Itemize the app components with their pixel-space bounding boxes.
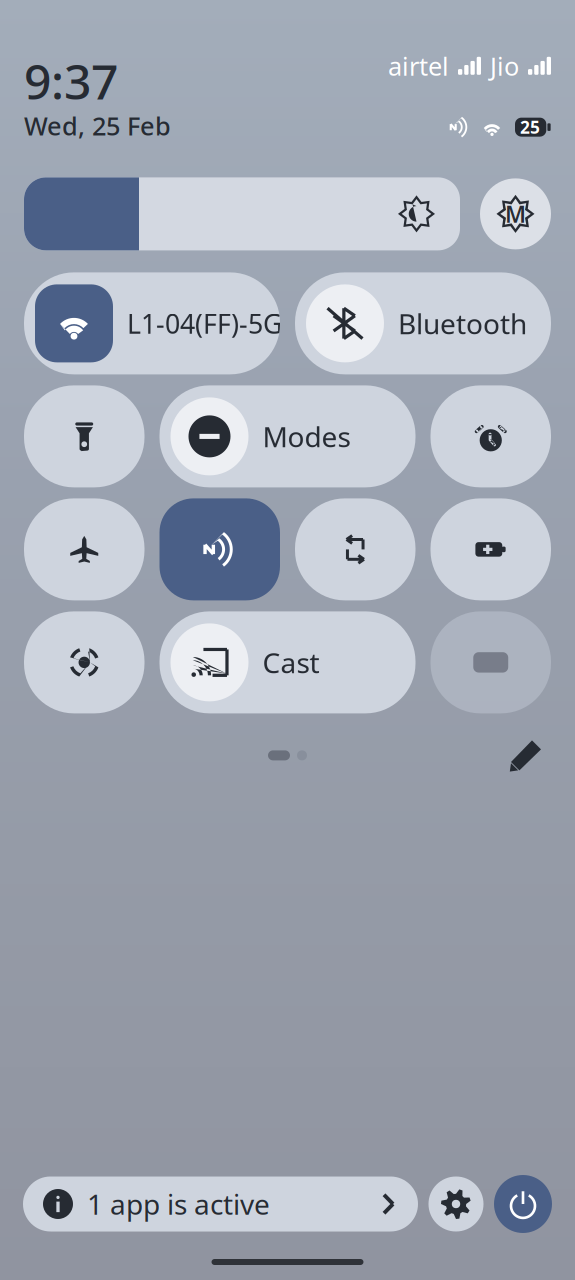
button[interactable]: Power (494, 1175, 552, 1233)
staticText: Bluetooth (398, 305, 527, 342)
button[interactable]: Wallet (430, 611, 551, 713)
staticText: Wed, 25 Feb (24, 109, 171, 142)
staticText: Cast (262, 644, 319, 681)
staticText: airtel (388, 49, 449, 83)
staticText: Modes (262, 418, 350, 455)
button[interactable]: Auto brightness (480, 178, 551, 249)
button[interactable]: NFC (159, 498, 280, 600)
button[interactable]: Battery saver (430, 498, 551, 600)
button[interactable]: Location (24, 611, 144, 713)
button[interactable]: 1 app is active (23, 1176, 418, 1231)
button[interactable]: Cast (159, 611, 415, 713)
button[interactable]: Brightness (24, 177, 460, 250)
button[interactable]: Settings (428, 1176, 483, 1231)
staticText: 25 (520, 116, 540, 139)
staticText: L1-04(FF)-5G (127, 306, 282, 341)
button[interactable]: Flashlight (24, 385, 144, 487)
staticText: 1 app is active (87, 1185, 270, 1223)
button[interactable]: Edit (501, 730, 551, 780)
button[interactable]: Alarm (430, 385, 551, 487)
staticText: M (505, 199, 526, 229)
button[interactable]: Modes (159, 385, 415, 487)
button[interactable]: Auto rotate (295, 498, 415, 600)
button[interactable]: Airplane mode (24, 498, 144, 600)
button[interactable]: L1-04(FF)-5G (24, 272, 280, 374)
button[interactable]: Bluetooth (295, 272, 551, 374)
staticText: 9:37 (24, 49, 118, 113)
staticText: Jio (490, 49, 519, 83)
